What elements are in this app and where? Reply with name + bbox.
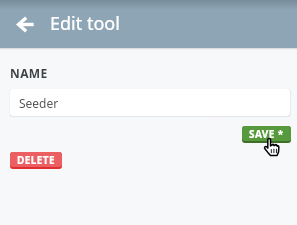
staticText: NAME bbox=[10, 65, 48, 81]
staticText: Seeder bbox=[19, 95, 59, 111]
button[interactable]: Seeder bbox=[10, 89, 290, 116]
staticText: DELETE bbox=[17, 153, 55, 167]
button[interactable]: Back bbox=[9, 8, 41, 40]
staticText: SAVE * bbox=[249, 127, 284, 141]
staticText: Edit tool bbox=[50, 11, 120, 36]
button[interactable]: SAVE * bbox=[242, 126, 291, 143]
button[interactable]: DELETE bbox=[10, 152, 62, 169]
